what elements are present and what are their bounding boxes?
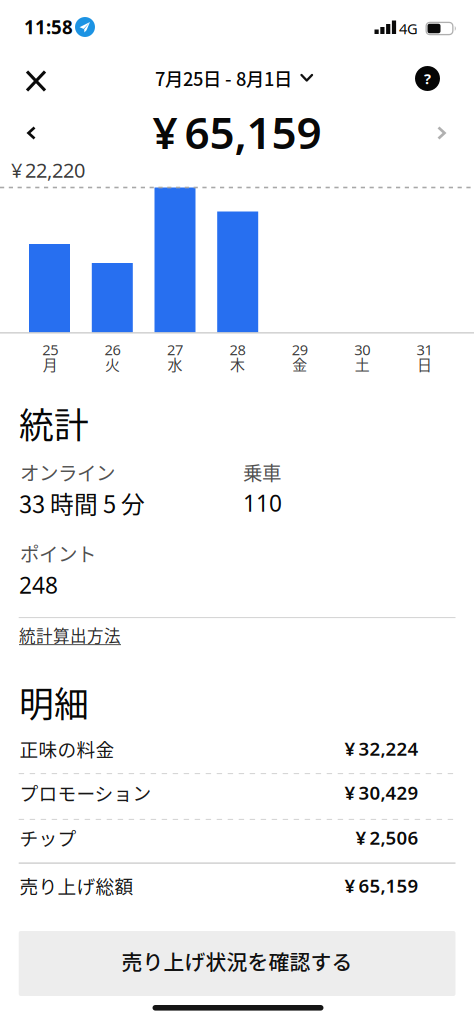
staticText: 正味の料金 [19, 735, 114, 762]
staticText: 統計算出方法 [19, 623, 121, 647]
staticText: 29 [292, 340, 308, 359]
staticText: ¥ 22,220 [11, 157, 85, 183]
staticText: 月 [43, 353, 58, 375]
staticText: ? [424, 69, 431, 88]
button[interactable]: Close [17, 61, 55, 100]
button[interactable]: 統計算出方法 [19, 625, 121, 645]
staticText: 土 [355, 353, 370, 375]
staticText: 4G [399, 19, 418, 38]
staticText: 26 [105, 340, 121, 359]
staticText: 27 [167, 340, 183, 359]
staticText: 木 [230, 353, 245, 375]
staticText: 明細 [19, 677, 89, 727]
button[interactable]: 売り上げ状況を確認する [19, 931, 455, 996]
staticText: 31 [417, 340, 433, 359]
staticText: 7月25日 - 8月1日 [155, 65, 292, 91]
staticText: ¥ 2,506 [355, 825, 418, 850]
staticText: 11:58 [24, 15, 73, 39]
button[interactable]: Previous week [17, 116, 46, 150]
staticText: 金 [292, 353, 307, 375]
staticText: ¥ 65,159 [344, 873, 418, 898]
staticText: ¥ 65,159 [152, 103, 321, 161]
staticText: オンライン [20, 458, 115, 486]
staticText: チップ [19, 824, 76, 851]
button[interactable]: Next week [427, 116, 456, 150]
staticText: ¥ 30,429 [344, 780, 418, 805]
button[interactable]: Help [415, 66, 440, 91]
button[interactable]: 7月25日 - 8月1日 [155, 65, 313, 91]
staticText: 日 [417, 353, 432, 375]
staticText: ポイント [20, 539, 96, 567]
staticText: 110 [243, 488, 282, 518]
staticText: 売り上げ状況を確認する [122, 946, 353, 976]
staticText: 33 時間 5 分 [19, 486, 145, 520]
staticText: 売り上げ総額 [19, 872, 133, 899]
staticText: 28 [229, 340, 245, 359]
staticText: 乗車 [243, 458, 281, 486]
staticText: 統計 [19, 398, 89, 448]
staticText: 248 [19, 570, 58, 600]
staticText: 火 [105, 353, 120, 375]
staticText: 25 [42, 340, 58, 359]
staticText: プロモーション [19, 779, 151, 806]
staticText: 30 [354, 340, 370, 359]
staticText: 水 [167, 353, 182, 375]
staticText: ¥ 32,224 [344, 736, 418, 761]
